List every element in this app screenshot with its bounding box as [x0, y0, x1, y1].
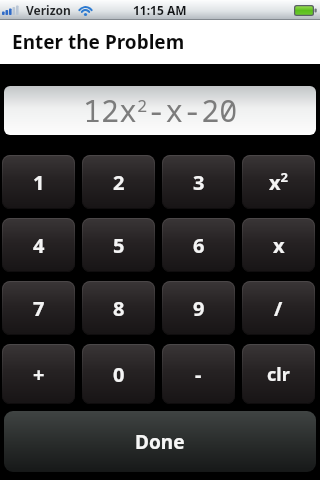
staticText: 4 — [33, 232, 45, 259]
staticText: Enter the Problem — [12, 29, 185, 55]
button[interactable]: 7 — [2, 281, 75, 335]
staticText: 5 — [113, 232, 125, 259]
button[interactable]: - — [162, 344, 235, 404]
staticText: 11:15 AM — [133, 2, 187, 18]
staticText: 8 — [113, 295, 125, 322]
button[interactable]: 6 — [162, 218, 235, 272]
staticText: 3 — [193, 169, 205, 196]
staticText: Verizon — [26, 2, 71, 18]
button[interactable]: x — [242, 218, 315, 272]
button[interactable]: clr — [242, 344, 315, 404]
staticText: - — [195, 361, 202, 388]
staticText: 12x2-x-20 — [83, 90, 238, 131]
staticText: 1 — [33, 169, 45, 196]
staticText: 7 — [33, 295, 45, 322]
button[interactable]: + — [2, 344, 75, 404]
button[interactable]: / — [242, 281, 315, 335]
staticText: / — [274, 295, 283, 322]
button[interactable]: 8 — [82, 281, 155, 335]
button[interactable]: 2 — [82, 155, 155, 209]
button[interactable]: 1 — [2, 155, 75, 209]
button[interactable]: x2 — [242, 155, 315, 209]
button[interactable]: Done — [4, 411, 316, 472]
button[interactable]: 9 — [162, 281, 235, 335]
staticText: 0 — [113, 361, 125, 388]
staticText: 2 — [113, 169, 125, 196]
staticText: x2 — [269, 168, 288, 196]
staticText: + — [33, 361, 45, 388]
button[interactable]: 5 — [82, 218, 155, 272]
staticText: 6 — [193, 232, 205, 259]
staticText: x — [273, 232, 285, 259]
staticText: clr — [267, 362, 290, 387]
button[interactable]: 0 — [82, 344, 155, 404]
button[interactable]: 4 — [2, 218, 75, 272]
button[interactable]: 3 — [162, 155, 235, 209]
staticText: Done — [135, 429, 185, 455]
staticText: 9 — [193, 295, 205, 322]
